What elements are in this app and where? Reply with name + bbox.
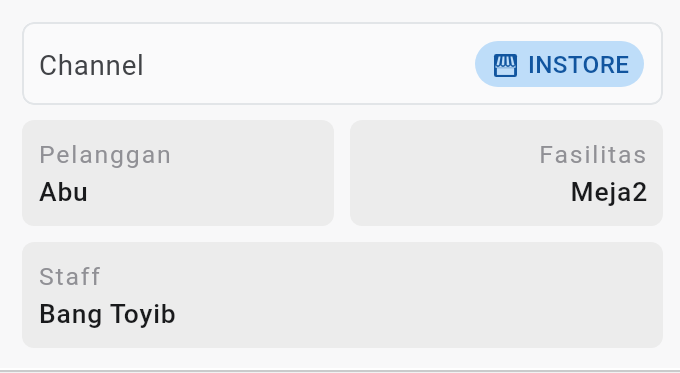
button[interactable]: In store (475, 41, 644, 87)
button[interactable]: Channel (22, 22, 663, 105)
staticText: Fasilitas (367, 140, 648, 169)
other: In store (494, 54, 517, 77)
button[interactable]: Fasilitas (350, 120, 663, 226)
staticText: Meja2 (367, 177, 648, 208)
staticText: Bang Toyib (39, 299, 650, 330)
staticText: INSTORE (528, 50, 630, 78)
staticText: Channel (39, 49, 145, 81)
staticText: Pelanggan (39, 140, 321, 169)
button[interactable]: Pelanggan (22, 120, 334, 226)
staticText: Abu (39, 177, 321, 208)
staticText: Staff (39, 262, 650, 291)
button[interactable]: Staff (22, 242, 663, 348)
